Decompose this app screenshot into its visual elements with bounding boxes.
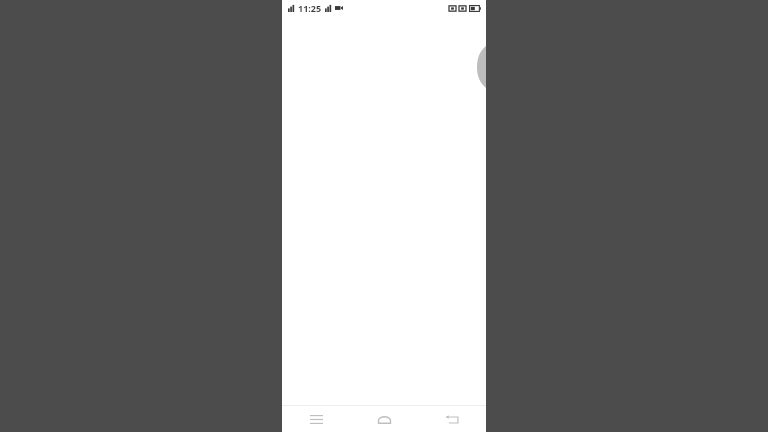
button[interactable]: Recent apps	[282, 406, 350, 432]
button[interactable]: Home	[350, 406, 418, 432]
staticText: 11:25	[298, 2, 322, 14]
button[interactable]: Back	[418, 406, 486, 432]
